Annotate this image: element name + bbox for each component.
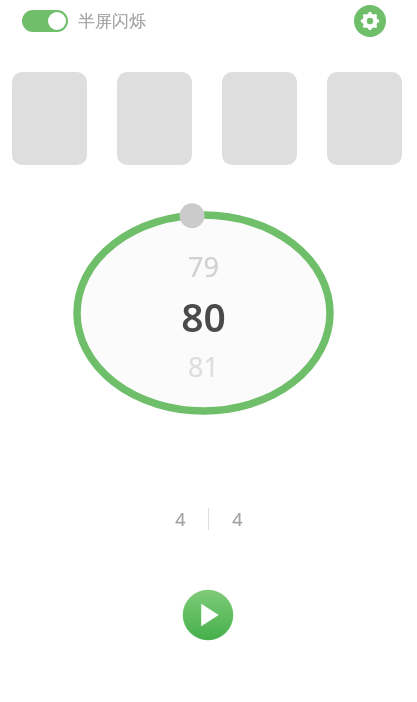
button[interactable]: 4	[152, 504, 208, 534]
button[interactable]: Settings	[354, 5, 386, 37]
button[interactable]	[12, 72, 87, 165]
staticText: 半屏闪烁	[78, 11, 146, 32]
button[interactable]: 半屏闪烁	[22, 9, 146, 33]
button[interactable]: Play	[180, 587, 236, 643]
staticText: 80	[181, 290, 226, 343]
staticText: 4	[175, 507, 186, 532]
staticText: 4	[232, 507, 243, 532]
button[interactable]	[117, 72, 192, 165]
button[interactable]	[327, 72, 402, 165]
button[interactable]: 79	[71, 196, 336, 428]
staticText: 79	[188, 248, 219, 285]
button[interactable]	[222, 72, 297, 165]
button[interactable]: 4	[209, 504, 265, 534]
staticText: 81	[188, 348, 219, 385]
